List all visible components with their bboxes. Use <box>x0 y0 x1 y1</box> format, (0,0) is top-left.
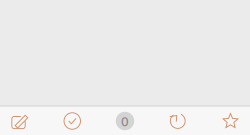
button[interactable]: Favorites <box>221 106 240 135</box>
button[interactable]: Unread count <box>115 106 134 135</box>
button[interactable]: Refresh <box>168 106 187 135</box>
button[interactable]: Compose <box>10 106 29 135</box>
button[interactable]: Select <box>63 106 82 135</box>
staticText: 0 <box>121 112 129 130</box>
